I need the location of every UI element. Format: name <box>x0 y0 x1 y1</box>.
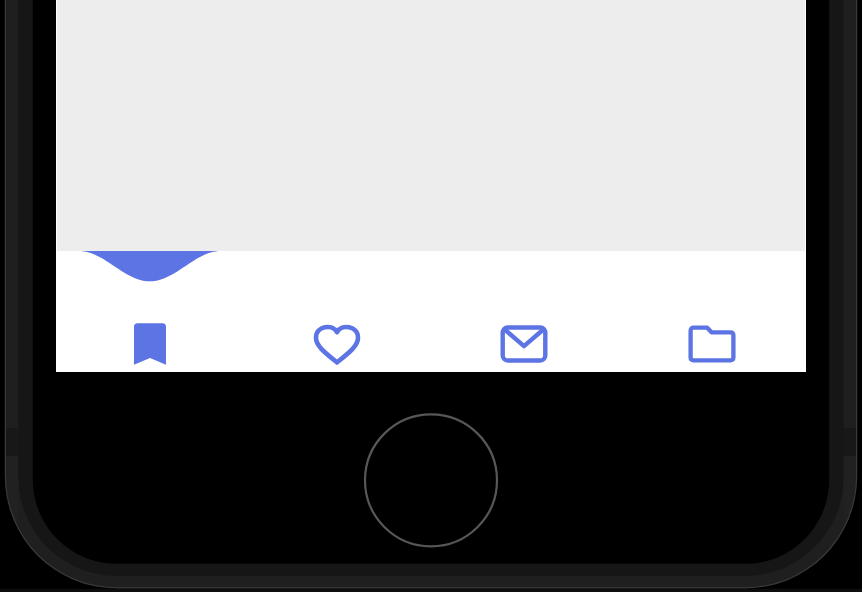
button[interactable]: Mail <box>430 251 618 372</box>
button[interactable]: Home <box>365 414 497 546</box>
button[interactable]: Favourites <box>243 251 430 372</box>
button[interactable]: Bookmarks <box>56 251 243 372</box>
button[interactable]: Files <box>618 251 806 372</box>
